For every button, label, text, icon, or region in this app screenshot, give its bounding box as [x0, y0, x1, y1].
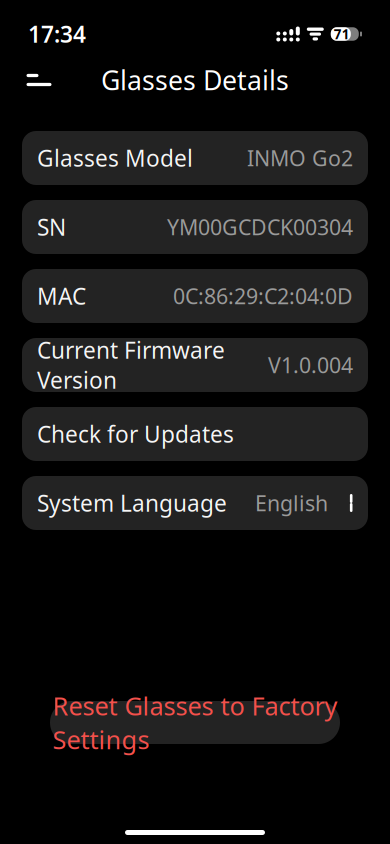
- button[interactable]: MAC: [22, 269, 368, 323]
- button[interactable]: Back: [14, 58, 64, 102]
- staticText: Reset Glasses to Factory Settings: [52, 689, 337, 756]
- button[interactable]: Glasses Model: [22, 131, 368, 185]
- staticText: 71: [334, 25, 350, 43]
- staticText: English: [255, 489, 328, 517]
- button[interactable]: Reset Glasses to Factory Settings: [50, 701, 340, 744]
- staticText: YM00GCDCK00304: [167, 213, 353, 241]
- staticText: 0C:86:29:C2:04:0D: [173, 282, 353, 310]
- staticText: Glasses Details: [101, 62, 289, 98]
- staticText: System Language: [37, 488, 227, 518]
- staticText: Current Firmware Version: [37, 335, 225, 395]
- button[interactable]: Check for Updates: [22, 407, 368, 461]
- staticText: SN: [37, 212, 66, 242]
- staticText: V1.0.004: [268, 351, 353, 379]
- button[interactable]: Current Firmware Version: [22, 338, 368, 392]
- staticText: 17:34: [28, 19, 86, 49]
- staticText: MAC: [37, 281, 86, 311]
- button[interactable]: System Language: [22, 476, 368, 530]
- staticText: INMO Go2: [247, 144, 353, 172]
- button[interactable]: SN: [22, 200, 368, 254]
- staticText: Glasses Model: [37, 143, 193, 173]
- staticText: Check for Updates: [37, 419, 234, 449]
